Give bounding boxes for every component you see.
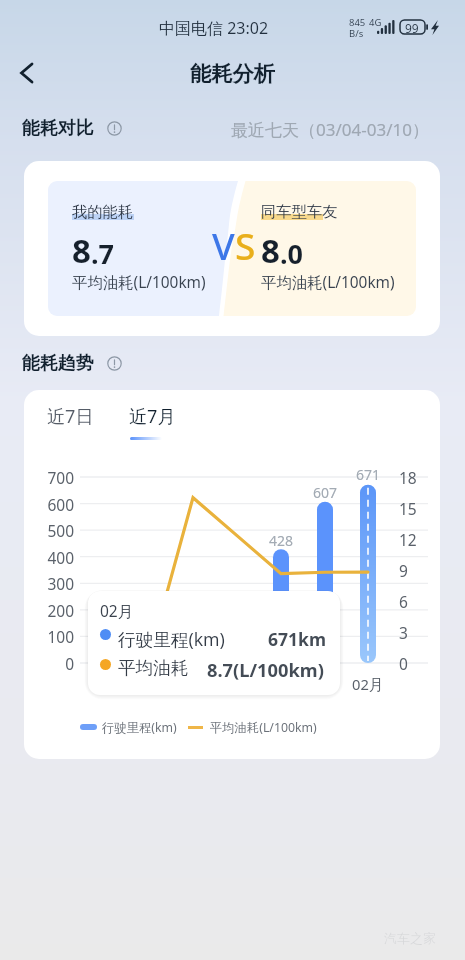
staticText: 500 [47, 520, 74, 540]
staticText: 15 [399, 498, 417, 518]
staticText: 671km [268, 627, 326, 651]
staticText: 428 [269, 531, 294, 549]
staticText: 99 [405, 20, 419, 36]
staticText: 同车型车友 [261, 202, 338, 221]
staticText: B/s [349, 27, 364, 40]
staticText: 近7月 [129, 404, 176, 429]
staticText: 12 [399, 529, 417, 549]
staticText: S [235, 220, 256, 270]
button[interactable]: Info about trend [106, 355, 122, 371]
staticText: 02月 [100, 600, 134, 621]
staticText: 300 [47, 573, 74, 593]
staticText: 平均油耗 [118, 657, 189, 679]
staticText: 8.7(L/100km) [207, 657, 324, 682]
staticText: 02月 [352, 674, 384, 692]
staticText: 能耗分析 [190, 61, 275, 88]
staticText: .7 [91, 235, 115, 272]
staticText: 平均油耗(L/100km) [210, 719, 317, 736]
staticText: 671 [356, 465, 381, 483]
staticText: 600 [47, 494, 74, 514]
staticText: 4G [369, 16, 382, 29]
staticText: 0 [65, 653, 74, 673]
staticText: 700 [47, 467, 74, 487]
staticText: 我的能耗 [72, 202, 134, 221]
button[interactable]: Back [5, 52, 47, 94]
staticText: 200 [47, 600, 74, 620]
staticText: 400 [47, 547, 74, 567]
staticText: 能耗对比 [22, 117, 94, 140]
staticText: .0 [280, 235, 304, 272]
staticText: 845 [349, 16, 366, 29]
staticText: 近7日 [47, 404, 94, 429]
button[interactable]: 我的能耗 [24, 161, 440, 336]
staticText: 行驶里程(km) [118, 627, 225, 651]
staticText: 0 [399, 653, 408, 673]
staticText: 行驶里程(km) [102, 719, 177, 736]
staticText: 8 [261, 228, 280, 273]
staticText: 中国电信 23:02 [159, 17, 269, 39]
staticText: 能耗趋势 [22, 352, 94, 375]
staticText: 最近七天（03/04-03/10） [231, 118, 429, 141]
staticText: 3 [399, 622, 408, 642]
staticText: 平均油耗(L/100km) [261, 272, 395, 293]
button[interactable]: Info about comparison [106, 120, 122, 136]
staticText: 8 [72, 228, 91, 273]
staticText: 18 [399, 467, 417, 487]
button[interactable]: 近7月 [129, 404, 176, 429]
staticText: V [212, 220, 235, 270]
button[interactable]: 近7日 [47, 404, 94, 429]
staticText: 汽车之家 [384, 930, 436, 946]
staticText: 607 [313, 483, 338, 501]
staticText: 6 [399, 591, 408, 611]
staticText: 100 [47, 626, 74, 646]
staticText: 平均油耗(L/100km) [72, 272, 206, 293]
staticText: 9 [399, 560, 408, 580]
